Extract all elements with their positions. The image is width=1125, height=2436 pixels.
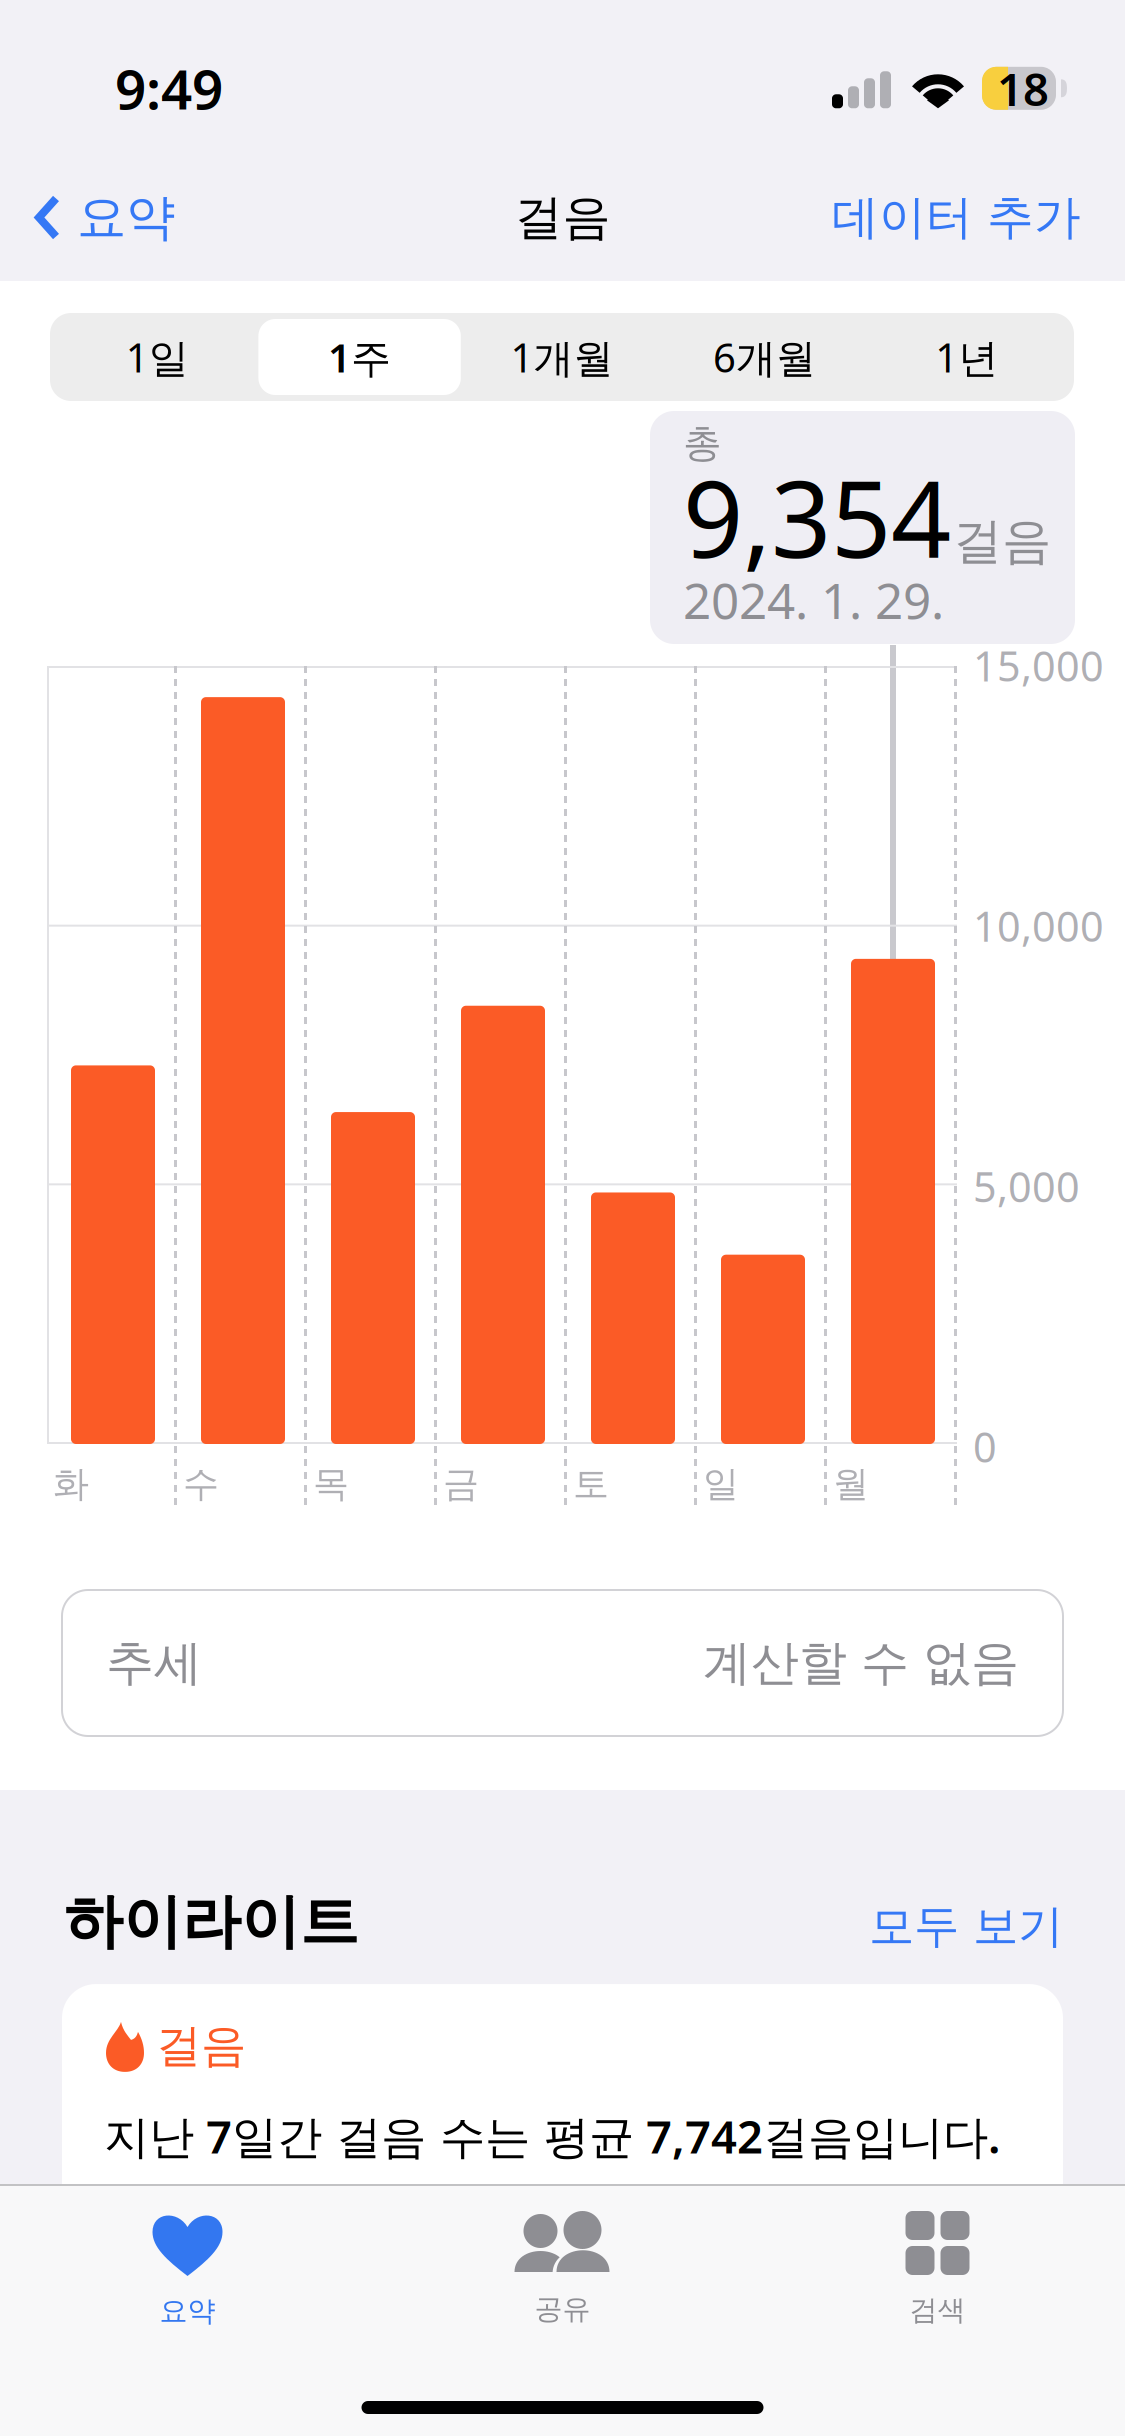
- staticText: 1개월: [510, 330, 613, 383]
- staticText: 6개월: [713, 330, 816, 383]
- staticText: 1주: [328, 330, 391, 383]
- button[interactable]: 1개월: [461, 319, 663, 395]
- staticText: 데이터 추가: [832, 189, 1081, 246]
- staticText: 걸음: [514, 188, 610, 247]
- staticText: 일: [703, 1462, 739, 1506]
- staticText: 10,000: [973, 898, 1104, 953]
- staticText: 9,354: [683, 447, 951, 587]
- staticText: 하이라이트: [64, 1886, 359, 1958]
- staticText: 걸음: [953, 511, 1051, 572]
- button[interactable]: 모두 보기: [869, 1899, 1063, 1954]
- staticText: 지난 7일간 걸음 수는 평균 7,742걸음입니다.: [104, 2106, 1001, 2166]
- staticText: 1년: [935, 330, 998, 383]
- button[interactable]: 1일: [56, 319, 258, 395]
- button[interactable]: 요약: [0, 154, 197, 281]
- staticText: 18: [997, 58, 1049, 118]
- staticText: 요약: [77, 187, 175, 248]
- staticText: 1일: [126, 330, 189, 383]
- button[interactable]: 걸음: [62, 1984, 1063, 2244]
- staticText: 금: [443, 1462, 479, 1506]
- button[interactable]: 요약: [0, 2186, 375, 2356]
- staticText: 요약: [159, 2294, 215, 2328]
- button[interactable]: 1주: [258, 319, 461, 395]
- staticText: 목: [313, 1462, 349, 1506]
- staticText: 15,000: [973, 638, 1104, 693]
- staticText: 수: [183, 1462, 219, 1506]
- staticText: 계산할 수 없음: [703, 1633, 1019, 1692]
- staticText: 월: [833, 1462, 869, 1506]
- staticText: 공유: [534, 2292, 590, 2326]
- staticText: 모두 보기: [869, 1899, 1063, 1954]
- button[interactable]: 데이터 추가: [810, 154, 1125, 281]
- staticText: 화: [53, 1462, 89, 1506]
- button[interactable]: 추세: [62, 1590, 1063, 1736]
- button[interactable]: 6개월: [663, 319, 866, 395]
- staticText: 추세: [106, 1633, 202, 1692]
- staticText: 2024. 1. 29.: [683, 567, 944, 632]
- staticText: 9:49: [115, 52, 223, 125]
- staticText: 걸음: [156, 2018, 246, 2074]
- staticText: 토: [573, 1462, 609, 1506]
- button[interactable]: 검색: [750, 2186, 1125, 2356]
- button[interactable]: 공유: [375, 2186, 750, 2356]
- staticText: 5,000: [973, 1159, 1080, 1214]
- staticText: 총: [683, 419, 722, 467]
- button[interactable]: 1년: [866, 319, 1068, 395]
- staticText: 0: [973, 1419, 997, 1474]
- staticText: 검색: [909, 2293, 965, 2327]
